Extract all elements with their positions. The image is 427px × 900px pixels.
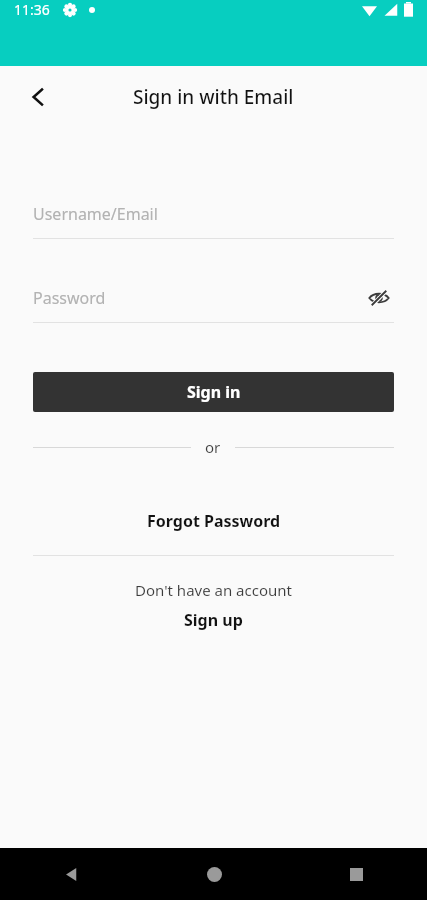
button[interactable]: Back <box>0 848 143 900</box>
button[interactable]: Password <box>33 280 394 323</box>
staticText: Don't have an account <box>33 580 394 600</box>
staticText: Forgot Password <box>147 510 281 532</box>
staticText: 11:36 <box>14 0 50 19</box>
staticText: Sign up <box>184 609 243 631</box>
button[interactable]: Sign up <box>33 609 394 631</box>
button[interactable]: Back <box>16 75 60 119</box>
button[interactable]: Recent apps <box>285 848 427 900</box>
staticText: Sign in with Email <box>133 84 294 110</box>
staticText: or <box>205 437 221 457</box>
button[interactable]: Sign in <box>33 372 394 412</box>
staticText: Sign in <box>187 381 241 403</box>
button[interactable]: Username/Email <box>33 196 394 239</box>
button[interactable]: Show password <box>364 283 394 313</box>
button[interactable]: Home <box>143 848 285 900</box>
staticText: Password <box>33 287 364 309</box>
staticText: Username/Email <box>33 203 394 225</box>
button[interactable]: Forgot Password <box>33 503 394 539</box>
